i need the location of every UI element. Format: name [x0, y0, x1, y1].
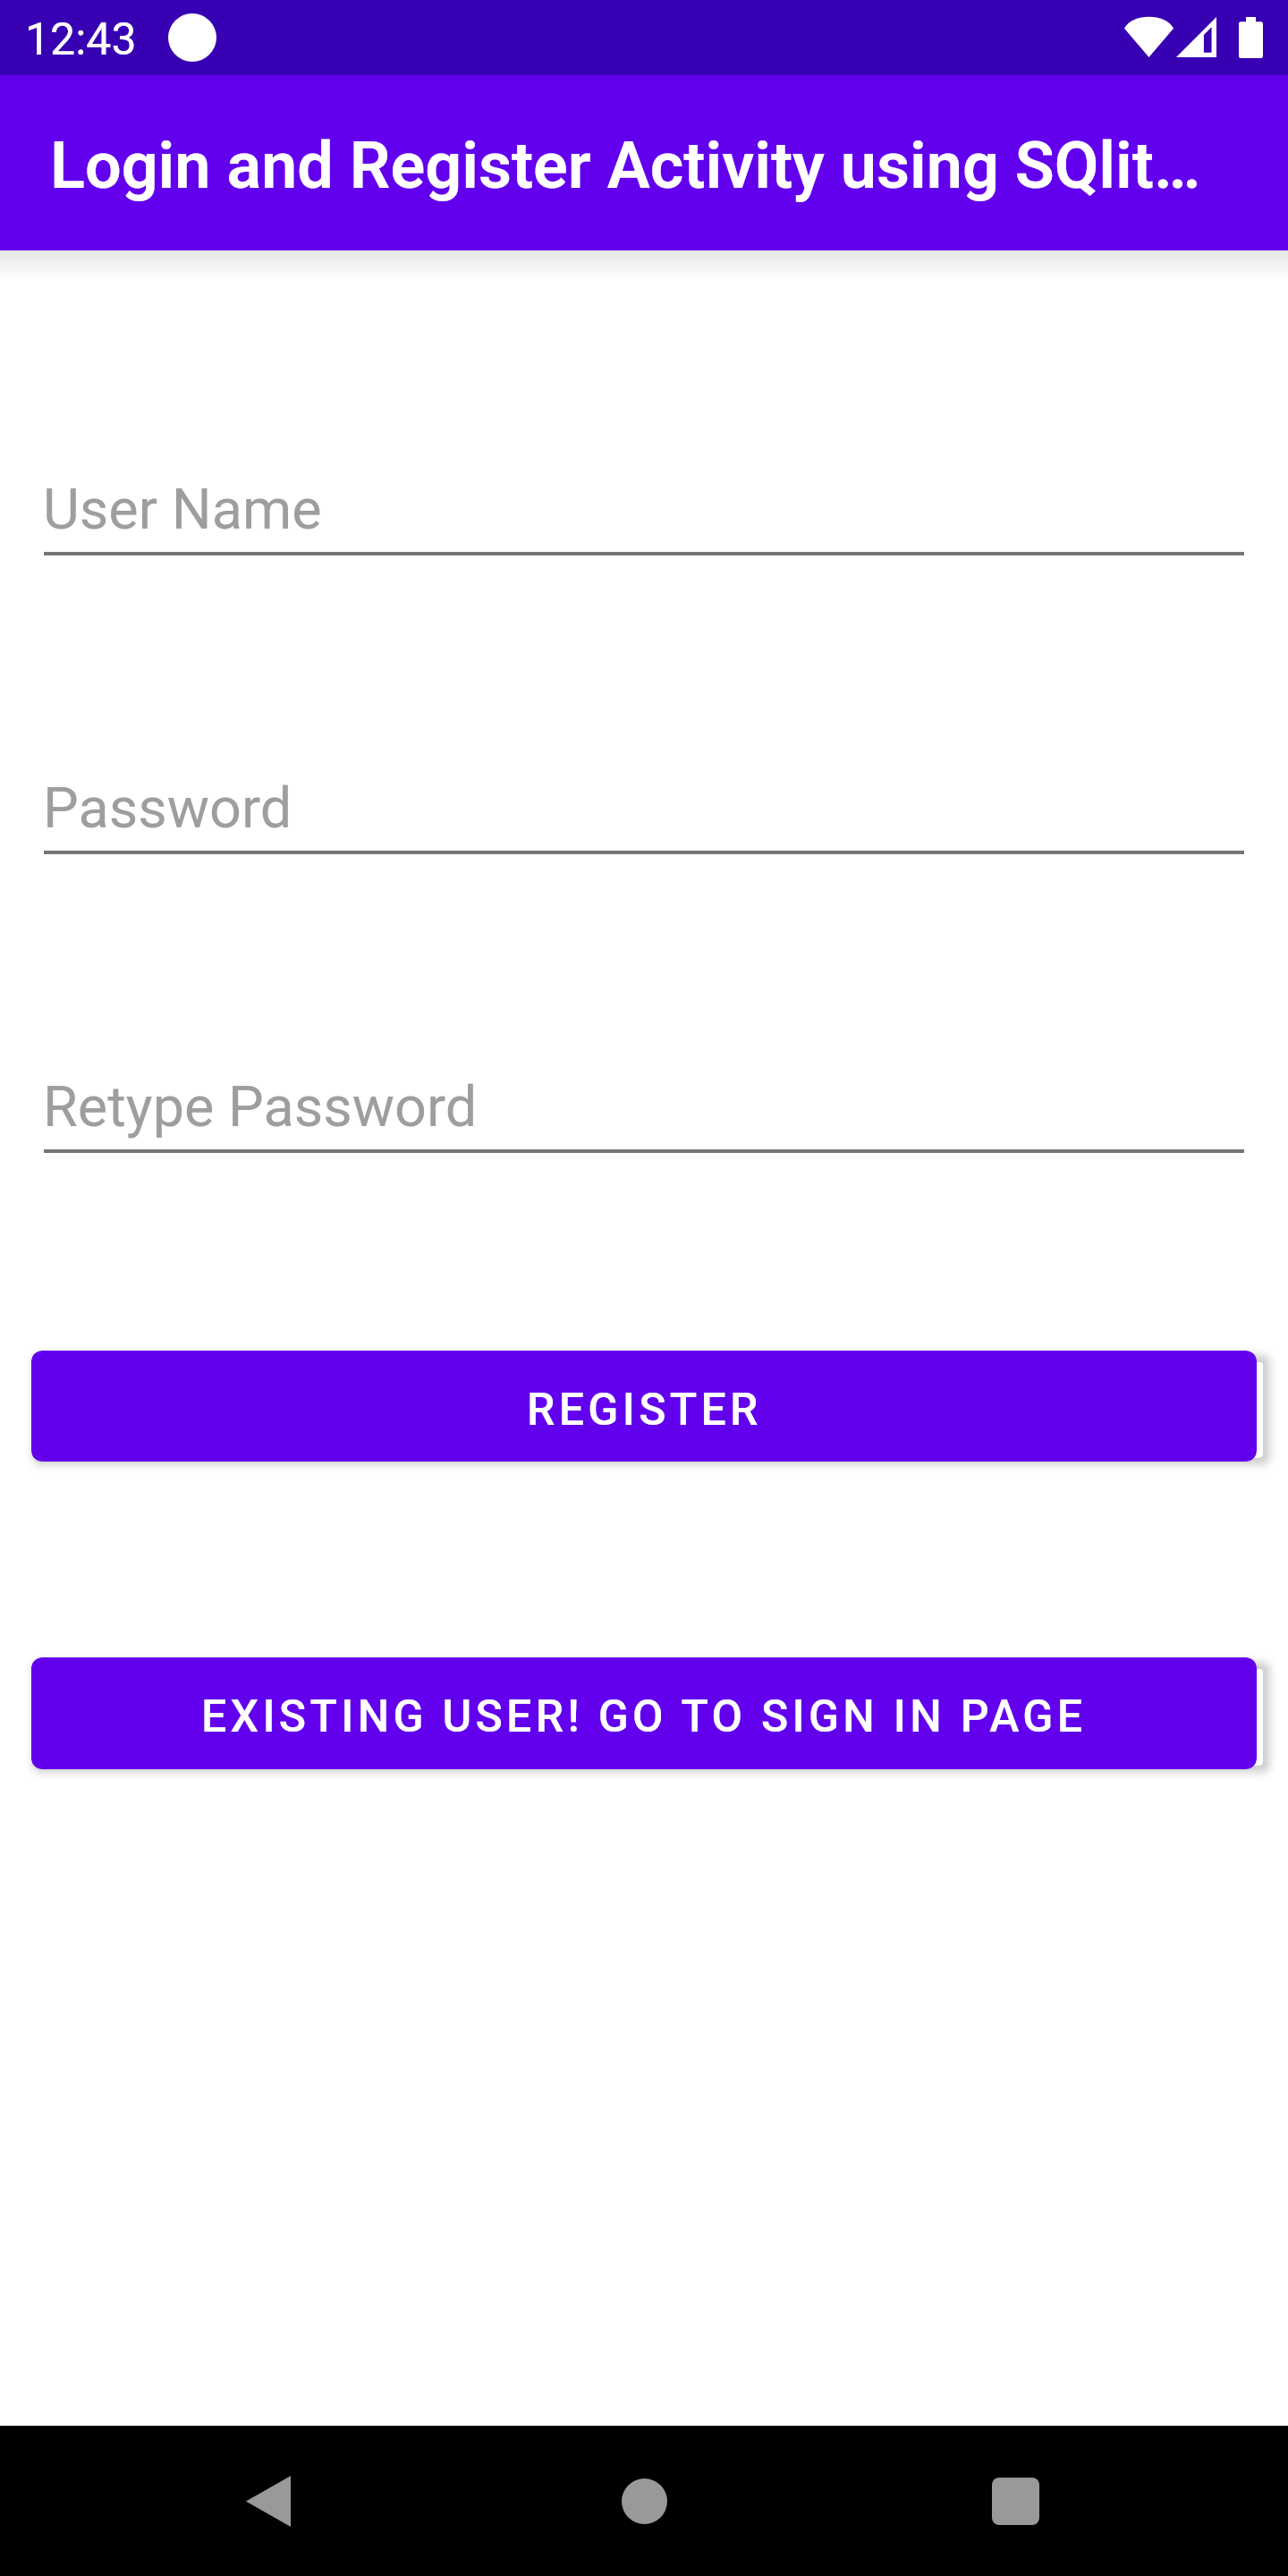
staticText: User Name	[43, 477, 322, 543]
button[interactable]: Back	[161, 2426, 376, 2576]
button[interactable]: EXISTING USER! GO TO SIGN IN PAGE	[31, 1657, 1257, 1769]
button[interactable]: Password	[44, 766, 1244, 854]
staticText: 12:43	[25, 13, 137, 66]
button[interactable]: Home	[537, 2426, 751, 2576]
button[interactable]: User Name	[44, 467, 1244, 555]
staticText: Login and Register Activity using SQlite…	[50, 128, 1218, 203]
button[interactable]: Retype Password	[44, 1064, 1244, 1153]
staticText: REGISTER	[527, 1384, 762, 1436]
staticText: EXISTING USER! GO TO SIGN IN PAGE	[201, 1690, 1087, 1743]
staticText: Password	[43, 775, 292, 842]
button[interactable]: Recent apps	[908, 2426, 1123, 2576]
button[interactable]: REGISTER	[31, 1351, 1257, 1462]
staticText: Retype Password	[43, 1074, 478, 1140]
